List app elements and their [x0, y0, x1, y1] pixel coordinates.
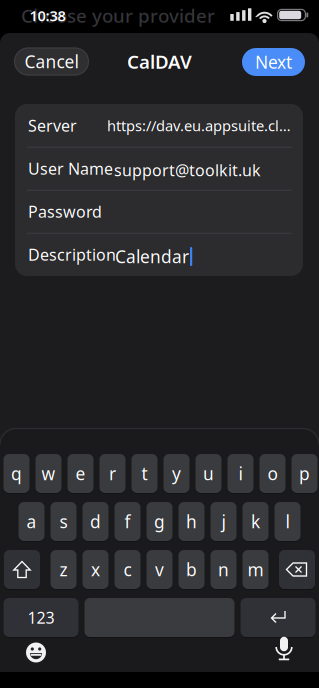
- staticText: Next: [255, 50, 292, 73]
- button[interactable]: Return: [240, 598, 315, 637]
- button[interactable]: c: [114, 550, 140, 589]
- staticText: https://dav.eu.appsuite.cloud/caldav: [107, 116, 292, 135]
- staticText: Choose your provider: [21, 3, 215, 28]
- button[interactable]: l: [274, 502, 300, 541]
- button[interactable]: t: [131, 454, 157, 493]
- staticText: Server: [28, 115, 77, 136]
- staticText: j: [221, 510, 225, 533]
- staticText: 123: [27, 607, 54, 628]
- button[interactable]: x: [82, 550, 108, 589]
- staticText: CalDAV: [127, 49, 192, 74]
- button[interactable]: g: [146, 502, 172, 541]
- staticText: o: [267, 462, 277, 485]
- staticText: h: [186, 510, 197, 533]
- button[interactable]: n: [210, 550, 236, 589]
- staticText: t: [141, 462, 147, 485]
- staticText: User Name: [28, 158, 113, 179]
- staticText: l: [285, 510, 289, 533]
- button[interactable]: Delete: [279, 550, 315, 589]
- button[interactable]: b: [178, 550, 204, 589]
- staticText: g: [154, 510, 165, 533]
- staticText: e: [75, 462, 85, 485]
- staticText: 10:38: [29, 6, 65, 25]
- staticText: i: [238, 462, 242, 485]
- button[interactable]: r: [99, 454, 125, 493]
- button[interactable]: Shift: [4, 550, 40, 589]
- staticText: y: [172, 462, 181, 485]
- staticText: Description: [28, 244, 116, 265]
- button[interactable]: Dictate: [272, 636, 296, 660]
- button[interactable]: Server: [28, 104, 292, 147]
- button[interactable]: j: [210, 502, 236, 541]
- button[interactable]: w: [35, 454, 61, 493]
- staticText: q: [11, 462, 22, 485]
- staticText: z: [59, 558, 67, 581]
- staticText: m: [247, 558, 263, 581]
- staticText: d: [90, 510, 101, 533]
- button[interactable]: 123: [3, 598, 78, 637]
- staticText: f: [124, 510, 130, 533]
- button[interactable]: f: [114, 502, 140, 541]
- staticText: w: [41, 462, 55, 485]
- staticText: Cancel: [24, 50, 78, 73]
- button[interactable]: o: [259, 454, 285, 493]
- staticText: Calendar: [115, 245, 189, 268]
- staticText: p: [299, 462, 310, 485]
- staticText: Password: [28, 201, 102, 222]
- button[interactable]: q: [3, 454, 29, 493]
- button[interactable]: v: [146, 550, 172, 589]
- staticText: u: [203, 462, 214, 485]
- button[interactable]: Cancel: [14, 47, 89, 75]
- staticText: s: [59, 510, 67, 533]
- button[interactable]: h: [178, 502, 204, 541]
- staticText: x: [91, 558, 100, 581]
- button[interactable]: m: [242, 550, 268, 589]
- button[interactable]: p: [291, 454, 317, 493]
- button[interactable]: a: [18, 502, 44, 541]
- staticText: support@toolkit.uk: [114, 159, 261, 181]
- button[interactable]: d: [82, 502, 108, 541]
- staticText: b: [186, 558, 197, 581]
- button[interactable]: Emoji: [26, 642, 46, 662]
- staticText: r: [109, 462, 116, 485]
- staticText: v: [155, 558, 164, 581]
- button[interactable]: User Name: [28, 147, 292, 190]
- button[interactable]: z: [50, 550, 76, 589]
- staticText: a: [26, 510, 36, 533]
- button[interactable]: y: [163, 454, 189, 493]
- button[interactable]: Description: [28, 233, 292, 276]
- button[interactable]: Next: [242, 48, 305, 76]
- button[interactable]: k: [242, 502, 268, 541]
- staticText: k: [251, 510, 260, 533]
- staticText: n: [218, 558, 229, 581]
- button[interactable]: Password: [28, 190, 292, 233]
- button[interactable]: e: [67, 454, 93, 493]
- staticText: c: [123, 558, 131, 581]
- button[interactable]: s: [50, 502, 76, 541]
- button[interactable]: u: [195, 454, 221, 493]
- button[interactable]: i: [227, 454, 253, 493]
